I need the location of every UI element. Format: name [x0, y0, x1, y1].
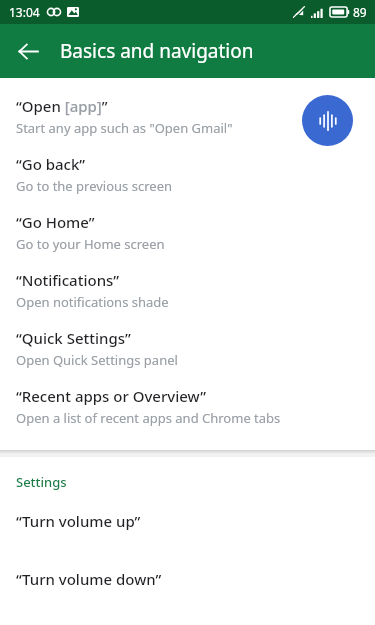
staticText: Go to the previous screen: [16, 177, 173, 195]
button[interactable]: “Quick Settings”: [0, 324, 375, 382]
button[interactable]: “Go Home”: [0, 208, 375, 266]
button[interactable]: “Turn volume down”: [0, 569, 375, 591]
staticText: “Turn volume down”: [16, 569, 162, 589]
staticText: “Turn volume up”: [16, 511, 141, 531]
staticText: “Open [app]”: [16, 96, 108, 116]
staticText: “Go back”: [16, 154, 86, 174]
staticText: “Quick Settings”: [16, 328, 131, 348]
button[interactable]: Voice search: [302, 95, 353, 146]
staticText: Basics and navigation: [60, 38, 254, 64]
staticText: Open a list of recent apps and Chrome ta…: [16, 409, 281, 427]
staticText: “Notifications”: [16, 270, 120, 290]
staticText: Start any app such as "Open Gmail": [16, 119, 233, 137]
staticText: 89: [353, 4, 367, 20]
staticText: Settings: [16, 473, 67, 491]
button[interactable]: Back: [8, 31, 48, 71]
staticText: “Recent apps or Overview”: [16, 386, 207, 406]
button[interactable]: “Recent apps or Overview”: [0, 382, 375, 440]
staticText: 13:04: [9, 4, 40, 20]
button[interactable]: “Go back”: [0, 150, 375, 208]
button[interactable]: “Turn volume up”: [0, 511, 375, 533]
button[interactable]: “Open [app]”: [0, 92, 375, 150]
staticText: Go to your Home screen: [16, 235, 165, 253]
staticText: Open notifications shade: [16, 293, 169, 311]
staticText: “Go Home”: [16, 212, 95, 232]
button[interactable]: “Notifications”: [0, 266, 375, 324]
staticText: Open Quick Settings panel: [16, 351, 178, 369]
